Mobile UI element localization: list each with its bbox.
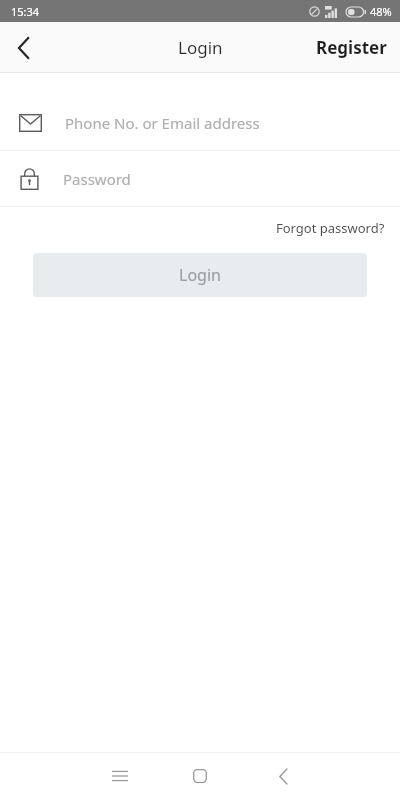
button[interactable]: Password [0, 151, 400, 206]
button[interactable]: Back [259, 752, 307, 800]
staticText: Phone No. or Email address [65, 113, 260, 133]
staticText: Password [63, 169, 131, 189]
staticText: Register [316, 36, 387, 59]
button[interactable]: Login [33, 253, 367, 297]
staticText: 48% [370, 4, 392, 19]
button[interactable]: Recents [96, 752, 144, 800]
staticText: Login [178, 36, 223, 59]
button[interactable]: Back [0, 24, 48, 72]
button[interactable]: Forgot password? [264, 207, 400, 247]
staticText: Forgot password? [276, 219, 385, 237]
staticText: 15:34 [11, 4, 40, 19]
button[interactable]: Home [176, 752, 224, 800]
staticText: Login [179, 264, 221, 286]
button[interactable]: Phone No. or Email address [0, 95, 400, 150]
button[interactable]: Register [303, 24, 400, 71]
